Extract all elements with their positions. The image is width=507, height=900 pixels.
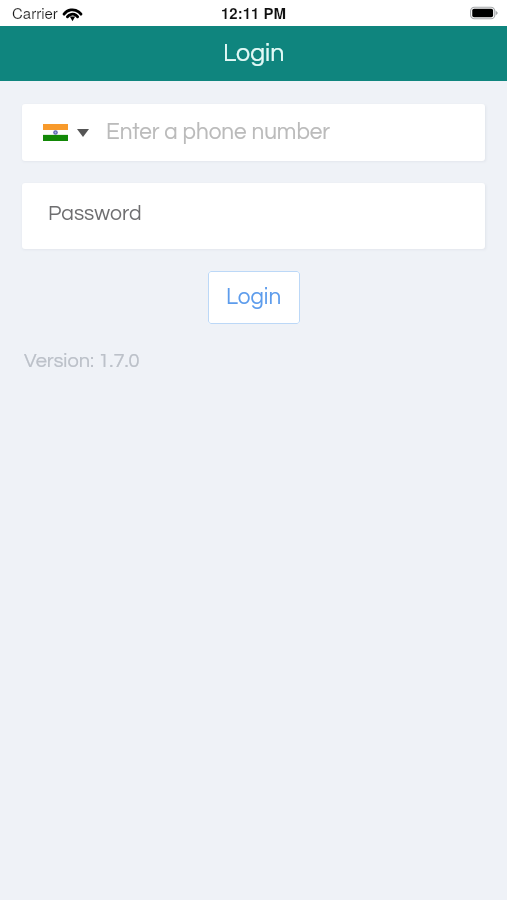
staticText: Carrier [12, 2, 58, 23]
staticText: Password [48, 203, 142, 225]
button[interactable]: Login [208, 271, 300, 324]
staticText: Version: 1.7.0 [24, 351, 140, 372]
button[interactable]: Select country calling code [22, 104, 485, 161]
staticText: Login [223, 40, 285, 66]
button[interactable]: Select country calling code [22, 104, 106, 161]
staticText: Enter a phone number [106, 121, 331, 144]
button[interactable]: Password [22, 183, 485, 249]
staticText: 12:11 PM [221, 2, 287, 23]
staticText: Login [226, 286, 282, 309]
